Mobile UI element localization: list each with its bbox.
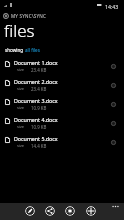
staticText: size <box>17 86 25 91</box>
staticText: Document 4.docx <box>14 116 58 123</box>
button[interactable]: Share <box>45 206 55 216</box>
button[interactable]: File info <box>109 138 118 147</box>
staticText: files <box>4 19 35 42</box>
staticText: Document 3.docx <box>14 97 58 104</box>
button[interactable]: More <box>108 203 122 209</box>
staticText: size <box>17 143 25 148</box>
button[interactable]: Add <box>86 206 96 216</box>
staticText: 10.9 KB <box>31 124 47 130</box>
button[interactable]: Document 5.docx <box>0 134 124 153</box>
button[interactable]: Document 4.docx <box>0 115 124 134</box>
button[interactable]: File info <box>109 100 118 109</box>
staticText: 10.9 KB <box>31 105 47 111</box>
staticText: MY SYNC\SYNC <box>11 13 47 19</box>
staticText: Document 2.docx <box>14 78 58 85</box>
button[interactable]: File info <box>109 62 118 71</box>
button[interactable]: Document 1.docx <box>0 58 124 77</box>
button[interactable]: File info <box>109 119 118 128</box>
staticText: showing <box>5 47 25 53</box>
staticText: Document 5.docx <box>14 135 58 142</box>
staticText: all files <box>25 47 40 53</box>
staticText: size <box>17 105 25 110</box>
button[interactable]: Document 2.docx <box>0 77 124 96</box>
staticText: 14:43 <box>105 3 119 10</box>
button[interactable]: Edit <box>25 206 35 216</box>
staticText: size <box>17 67 25 72</box>
staticText: 14.4 KB <box>31 143 47 149</box>
staticText: 23.4 KB <box>31 86 47 92</box>
staticText: Document 1.docx <box>14 59 58 66</box>
button[interactable]: Favorite <box>65 206 75 216</box>
button[interactable]: File info <box>109 81 118 90</box>
button[interactable]: Document 3.docx <box>0 96 124 115</box>
staticText: size <box>17 124 25 129</box>
staticText: 23.4 KB <box>31 67 47 73</box>
